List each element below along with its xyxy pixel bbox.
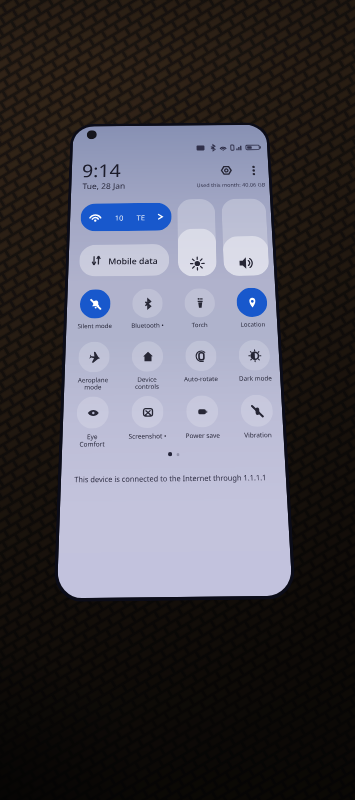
button[interactable]: Auto-rotate bbox=[174, 340, 228, 393]
button[interactable]: 10 bbox=[80, 203, 172, 231]
button[interactable]: Slider bbox=[177, 199, 217, 276]
staticText: Location bbox=[240, 320, 265, 328]
button[interactable]: More options bbox=[244, 161, 263, 178]
staticText: Power save bbox=[185, 430, 220, 439]
staticText: Eye Comfort bbox=[79, 432, 105, 448]
button[interactable]: Screenshot • bbox=[120, 396, 174, 450]
staticText: Auto-rotate bbox=[184, 374, 218, 382]
button[interactable]: Bluetooth • bbox=[121, 289, 173, 338]
button[interactable]: Power save bbox=[175, 395, 230, 450]
staticText: Torch bbox=[192, 320, 208, 328]
button[interactable]: Slider bbox=[221, 198, 270, 276]
button[interactable]: Mobile data bbox=[79, 244, 169, 277]
button[interactable]: Silent mode bbox=[68, 289, 120, 339]
button[interactable]: Eye Comfort bbox=[64, 396, 119, 451]
button[interactable]: Settings bbox=[215, 161, 236, 179]
staticText: Bluetooth • bbox=[131, 321, 164, 329]
staticText: This device is connected to the Internet… bbox=[70, 473, 270, 486]
button[interactable]: Torch bbox=[173, 288, 226, 338]
button[interactable]: Dark mode bbox=[227, 340, 281, 392]
staticText: TE bbox=[137, 212, 145, 222]
staticText: Mobile data bbox=[108, 255, 159, 266]
staticText: Device controls bbox=[135, 375, 159, 390]
staticText: Used this month: 40.06 GB bbox=[196, 181, 266, 189]
staticText: 9:14 bbox=[82, 158, 121, 183]
staticText: 10 bbox=[115, 213, 124, 222]
staticText: Tue, 28 Jan bbox=[82, 180, 126, 191]
staticText: Silent mode bbox=[77, 321, 112, 329]
staticText: Aeroplane mode bbox=[77, 375, 108, 390]
staticText: Dark mode bbox=[238, 373, 272, 382]
staticText: Screenshot • bbox=[128, 431, 167, 440]
button[interactable]: Device controls bbox=[120, 341, 174, 393]
button[interactable]: Aeroplane mode bbox=[66, 341, 120, 394]
staticText: Vibration bbox=[244, 430, 272, 438]
button[interactable]: Vibration bbox=[229, 395, 284, 449]
button[interactable]: Location bbox=[225, 288, 278, 337]
